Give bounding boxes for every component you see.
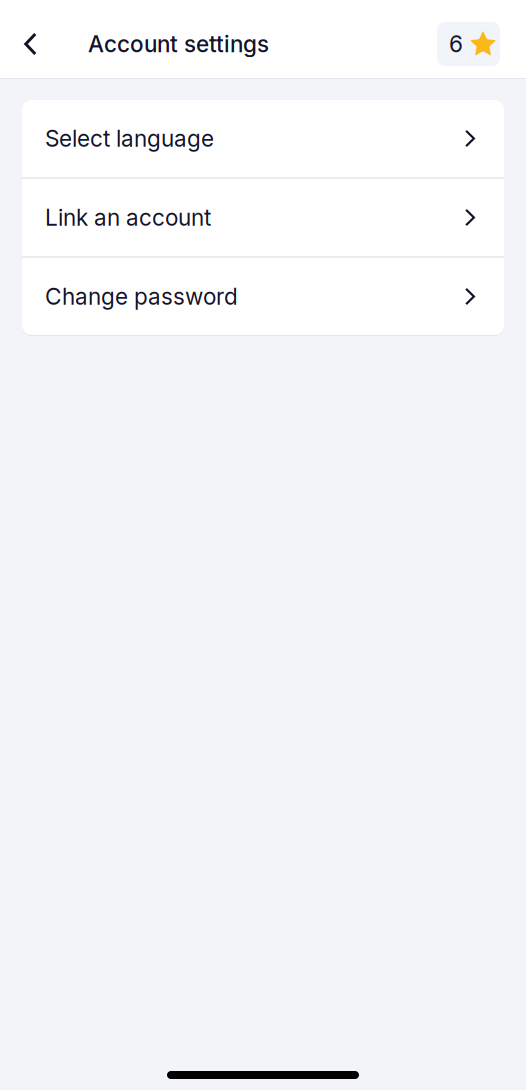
button[interactable]: Select language [22, 100, 504, 177]
button[interactable]: 6 stars [437, 22, 500, 66]
staticText: 6 [449, 30, 463, 58]
button[interactable]: Change password [22, 258, 504, 335]
staticText: Link an account [45, 204, 211, 231]
button[interactable]: Back [0, 15, 61, 73]
staticText: Account settings [88, 30, 269, 58]
button[interactable]: Link an account [22, 179, 504, 256]
staticText: Select language [45, 125, 214, 152]
staticText: Change password [45, 283, 238, 310]
